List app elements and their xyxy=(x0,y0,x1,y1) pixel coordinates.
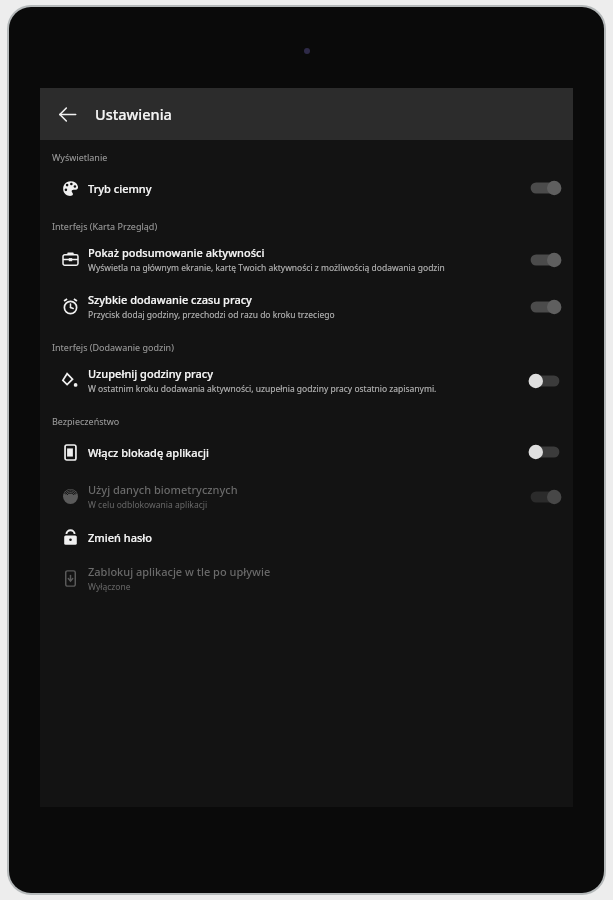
button[interactable]: Zmień hasło xyxy=(40,520,573,555)
button[interactable]: Włącz blokadę aplikacji xyxy=(40,431,573,473)
button[interactable]: Toggle xyxy=(525,176,565,200)
staticText: Szybkie dodawanie czasu pracy xyxy=(88,292,252,307)
button[interactable]: Toggle xyxy=(525,369,565,393)
staticText: W celu odblokowania aplikacji xyxy=(88,499,208,511)
button[interactable]: Uzupełnij godziny pracy xyxy=(40,357,573,404)
staticText: Interfejs (Dodawanie godzin) xyxy=(52,341,174,353)
button[interactable]: Zablokuj aplikacje w tle po upływie xyxy=(40,555,573,602)
button[interactable]: Szybkie dodawanie czasu pracy xyxy=(40,283,573,330)
button[interactable]: Toggle xyxy=(525,485,565,509)
staticText: Włącz blokadę aplikacji xyxy=(88,445,209,460)
staticText: Zmień hasło xyxy=(88,530,153,545)
staticText: Pokaż podsumowanie aktywności xyxy=(88,245,265,260)
staticText: W ostatnim kroku dodawania aktywności, u… xyxy=(88,383,437,395)
staticText: Użyj danych biometrycznych xyxy=(88,482,238,497)
button[interactable]: Toggle xyxy=(525,295,565,319)
staticText: Wyłączone xyxy=(88,581,131,593)
staticText: Tryb ciemny xyxy=(88,181,152,196)
staticText: Wyświetlanie xyxy=(52,151,108,163)
button[interactable]: Pokaż podsumowanie aktywności xyxy=(40,236,573,283)
staticText: Zablokuj aplikacje w tle po upływie xyxy=(88,564,271,579)
staticText: Przycisk dodaj godziny, przechodzi od ra… xyxy=(88,309,335,321)
button[interactable]: Toggle xyxy=(525,440,565,464)
staticText: Interfejs (Karta Przegląd) xyxy=(52,220,158,232)
button[interactable]: Użyj danych biometrycznych xyxy=(40,473,573,520)
staticText: Uzupełnij godziny pracy xyxy=(88,366,213,381)
staticText: Wyświetla na głównym ekranie, kartę Twoi… xyxy=(88,262,445,274)
staticText: Bezpieczeństwo xyxy=(52,415,120,427)
button[interactable]: Back xyxy=(47,94,87,134)
button[interactable]: Toggle xyxy=(525,248,565,272)
button[interactable]: Tryb ciemny xyxy=(40,167,573,209)
staticText: Ustawienia xyxy=(95,104,172,124)
